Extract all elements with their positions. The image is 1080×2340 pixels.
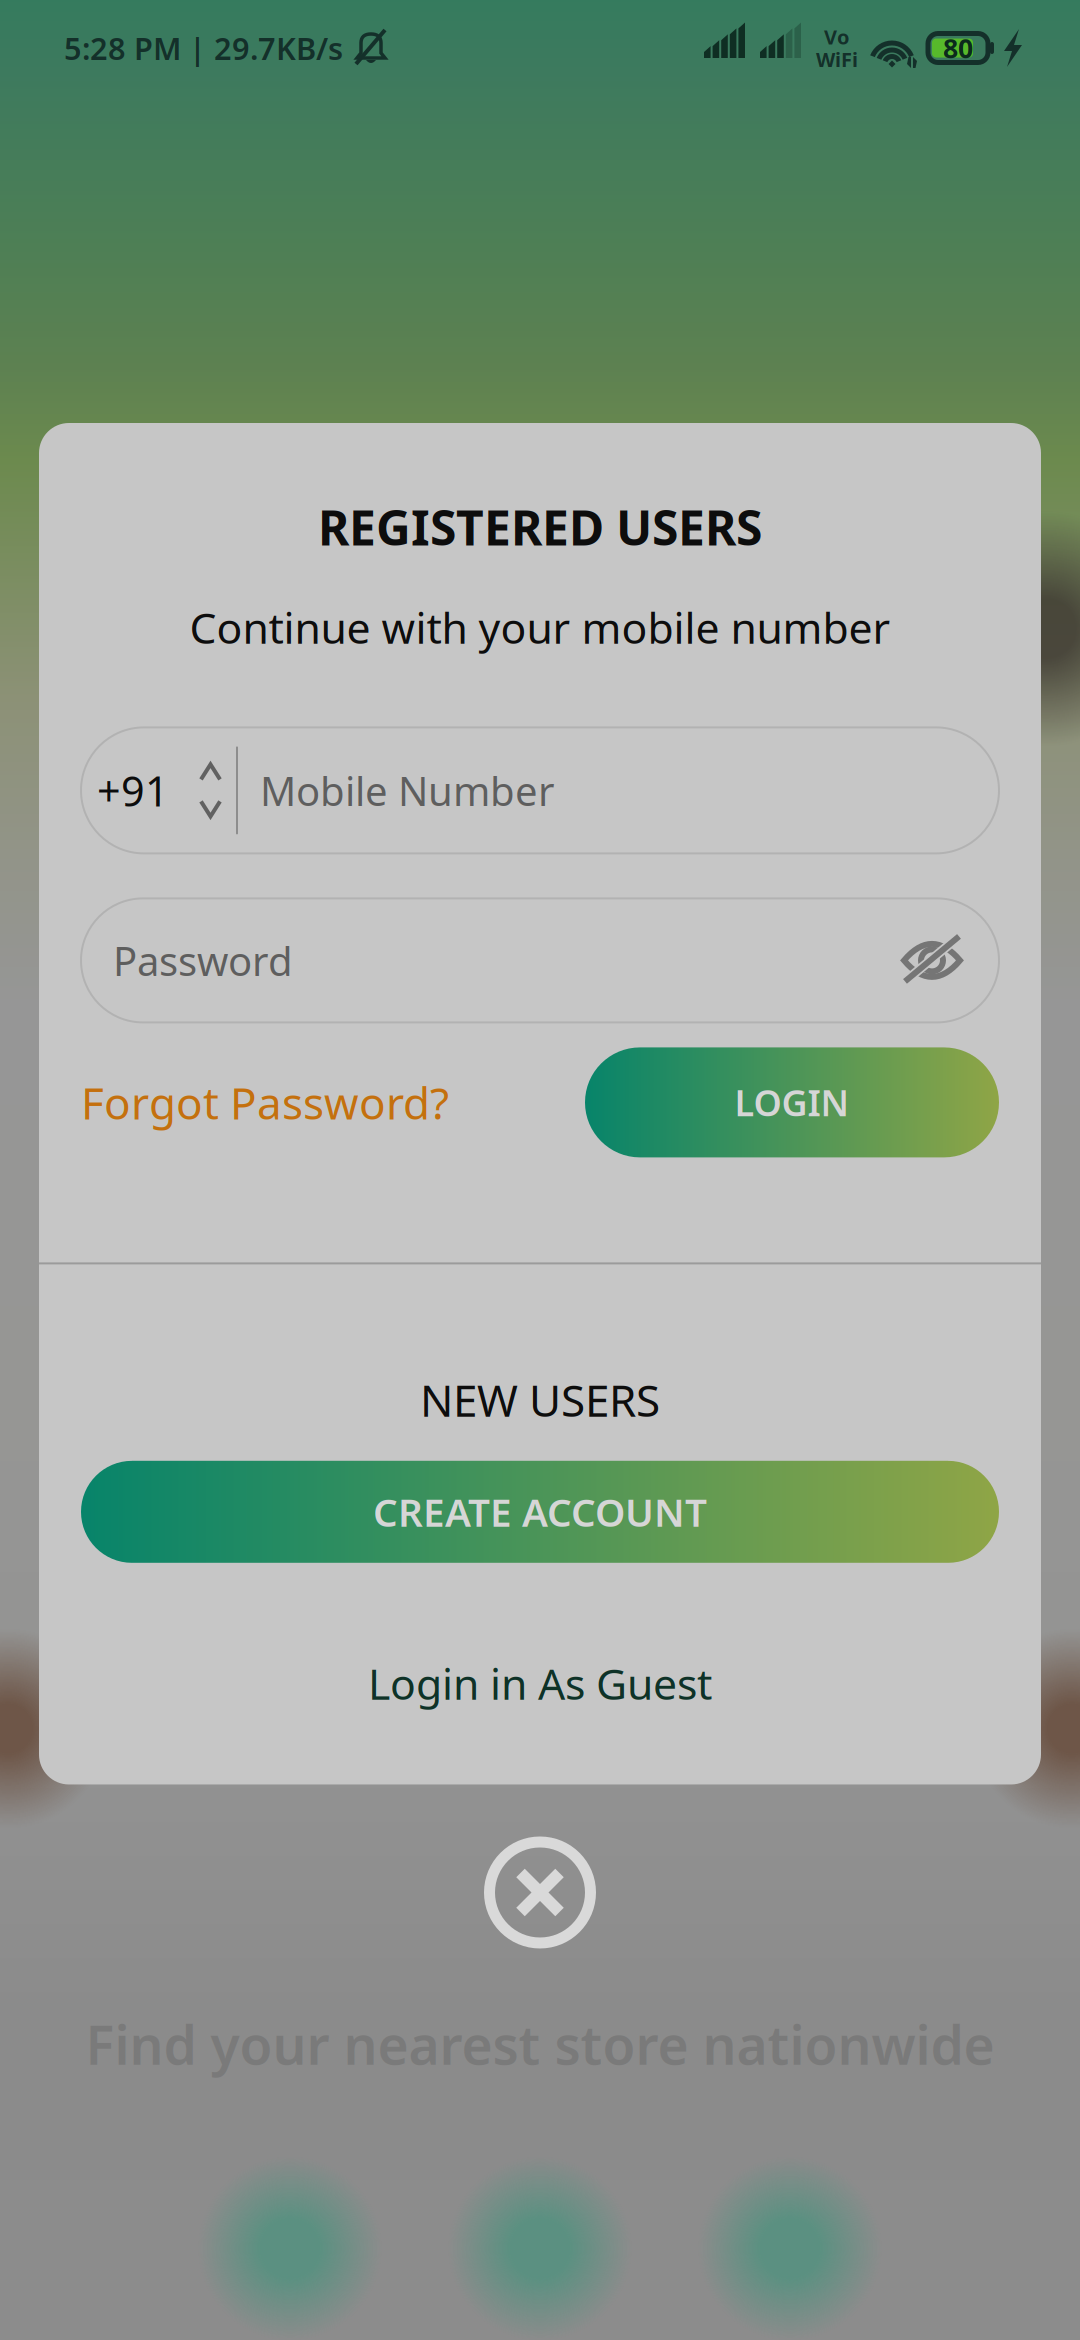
staticText: Continue with your mobile number bbox=[189, 599, 890, 655]
staticText: REGISTERED USERS bbox=[318, 495, 762, 559]
staticText: Mobile Number bbox=[260, 764, 555, 817]
button[interactable]: Close bbox=[480, 1832, 600, 1952]
button[interactable]: LOGIN bbox=[585, 1047, 999, 1157]
staticText: LOGIN bbox=[734, 1078, 849, 1126]
button[interactable]: Forgot Password? bbox=[81, 1073, 449, 1132]
staticText: 5:28 PM | 29.7KB/s bbox=[64, 28, 343, 68]
staticText: CREATE ACCOUNT bbox=[373, 1486, 707, 1537]
staticText: Vo bbox=[824, 23, 850, 50]
button[interactable]: Login in As Guest bbox=[368, 1655, 712, 1711]
staticText: +91 bbox=[97, 763, 169, 818]
staticText: Password bbox=[113, 934, 293, 987]
staticText: Login in As Guest bbox=[368, 1655, 712, 1711]
button[interactable]: CREATE ACCOUNT bbox=[39, 1461, 1041, 1563]
staticText: Find your nearest store nationwide bbox=[85, 2009, 994, 2079]
staticText: NEW USERS bbox=[420, 1370, 660, 1429]
staticText: Forgot Password? bbox=[81, 1073, 449, 1132]
staticText: 80 bbox=[943, 30, 973, 66]
staticText: WiFi bbox=[816, 46, 858, 73]
